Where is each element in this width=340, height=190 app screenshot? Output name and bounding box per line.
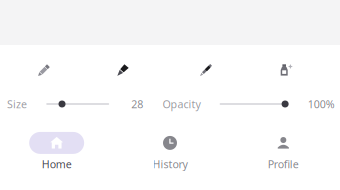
button[interactable]: Pen [103, 51, 143, 89]
staticText: Opacity [162, 97, 200, 111]
button[interactable]: Home [0, 132, 113, 171]
button[interactable]: Profile [227, 132, 340, 171]
button[interactable]: Marker [186, 51, 226, 89]
button[interactable]: Ink [266, 51, 306, 89]
button[interactable]: Pencil [24, 51, 64, 89]
staticText: Home [42, 157, 72, 171]
staticText: 28 [131, 97, 143, 111]
staticText: 100% [308, 97, 335, 111]
staticText: Size [7, 97, 27, 111]
staticText: History [152, 157, 187, 171]
button[interactable]: History [113, 132, 227, 171]
staticText: Profile [268, 157, 299, 171]
